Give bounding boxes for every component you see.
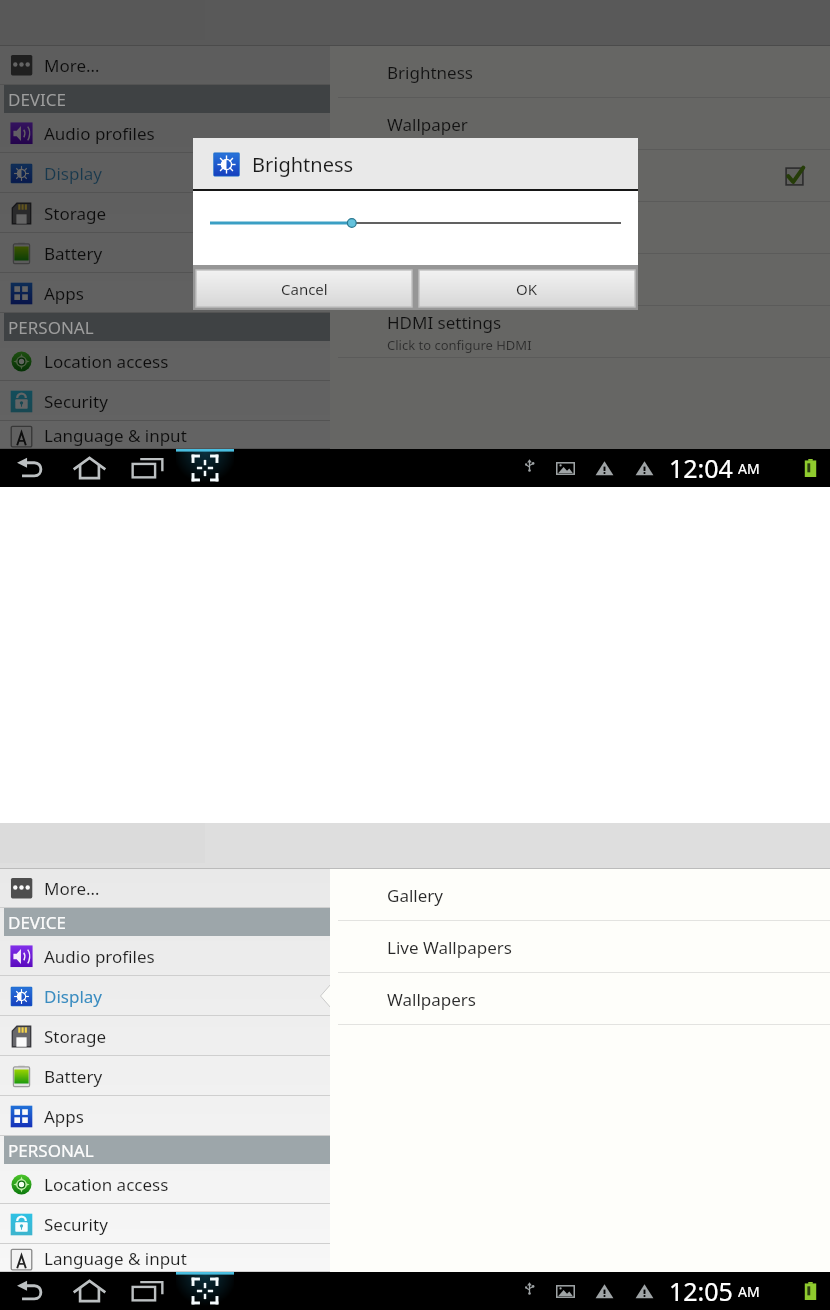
button[interactable]: Cancel bbox=[196, 270, 412, 307]
staticText: Language & input bbox=[44, 424, 187, 447]
staticText: Display bbox=[44, 985, 102, 1008]
staticText: AM bbox=[738, 1282, 760, 1301]
staticText: Gallery bbox=[387, 884, 443, 907]
button[interactable]: Back bbox=[2, 449, 60, 487]
staticText: Wallpaper bbox=[387, 113, 468, 136]
button[interactable]: Apps bbox=[0, 273, 330, 313]
button[interactable]: Language & input bbox=[0, 1244, 330, 1272]
staticText: PERSONAL bbox=[8, 1139, 94, 1162]
button[interactable]: Display bbox=[0, 976, 330, 1016]
staticText: AM bbox=[738, 459, 760, 478]
button[interactable]: Screenshot bbox=[176, 449, 234, 487]
button[interactable]: Storage bbox=[0, 193, 330, 233]
staticText: Audio profiles bbox=[44, 945, 155, 968]
staticText: 12:05 bbox=[669, 1274, 733, 1308]
button[interactable]: Language & input bbox=[0, 421, 330, 449]
staticText: OK bbox=[516, 279, 538, 299]
staticText: Storage bbox=[44, 202, 107, 225]
staticText: Storage bbox=[44, 1025, 107, 1048]
button[interactable]: More… bbox=[0, 46, 330, 85]
button[interactable]: Storage bbox=[0, 1016, 330, 1056]
staticText: 12:04 bbox=[669, 451, 733, 485]
staticText: Battery bbox=[44, 242, 103, 265]
button[interactable]: Recent apps bbox=[118, 449, 176, 487]
button[interactable]: HDMI settings bbox=[330, 306, 830, 358]
staticText: Security bbox=[44, 1213, 108, 1236]
button[interactable]: Sleep bbox=[330, 202, 830, 254]
staticText: Off bbox=[387, 284, 407, 302]
button[interactable]: Recent apps bbox=[118, 1272, 176, 1310]
staticText: Battery bbox=[44, 1065, 103, 1088]
staticText: More… bbox=[44, 877, 100, 900]
staticText: DEVICE bbox=[8, 88, 67, 111]
button[interactable]: OK bbox=[419, 270, 635, 307]
staticText: Security bbox=[44, 390, 108, 413]
staticText: Brightness bbox=[387, 61, 473, 84]
staticText: Location access bbox=[44, 1173, 169, 1196]
button[interactable]: Live Wallpapers bbox=[330, 921, 830, 973]
staticText: DEVICE bbox=[8, 911, 67, 934]
button[interactable]: Back bbox=[2, 1272, 60, 1310]
staticText: Daydream bbox=[387, 259, 470, 282]
button[interactable]: Gallery bbox=[330, 869, 830, 921]
button[interactable]: Auto-rotate screen bbox=[330, 150, 830, 202]
button[interactable]: Audio profiles bbox=[0, 936, 330, 976]
button[interactable]: Daydream bbox=[330, 254, 830, 306]
staticText: Live Wallpapers bbox=[387, 936, 512, 959]
button[interactable]: Apps bbox=[0, 1096, 330, 1136]
button[interactable]: Home bbox=[60, 449, 118, 487]
staticText: PERSONAL bbox=[8, 316, 94, 339]
button[interactable]: Battery bbox=[0, 233, 330, 273]
staticText: Display bbox=[44, 162, 102, 185]
staticText: Audio profiles bbox=[44, 122, 155, 145]
button[interactable]: Location access bbox=[0, 1164, 330, 1204]
button[interactable]: Wallpaper bbox=[330, 98, 830, 150]
button[interactable]: Display bbox=[0, 153, 330, 193]
staticText: Apps bbox=[44, 282, 84, 305]
button[interactable]: Security bbox=[0, 381, 330, 421]
staticText: Cancel bbox=[281, 279, 328, 299]
staticText: More… bbox=[44, 54, 100, 77]
button[interactable]: Battery bbox=[0, 1056, 330, 1096]
staticText: HDMI settings bbox=[387, 311, 502, 334]
staticText: Location access bbox=[44, 350, 169, 373]
button[interactable]: Location access bbox=[0, 341, 330, 381]
staticText: Click to configure HDMI bbox=[387, 336, 532, 354]
button[interactable]: Security bbox=[0, 1204, 330, 1244]
staticText: Language & input bbox=[44, 1247, 187, 1270]
button[interactable]: More… bbox=[0, 869, 330, 908]
button[interactable]: Home bbox=[60, 1272, 118, 1310]
staticText: Wallpapers bbox=[387, 988, 476, 1011]
staticText: Brightness bbox=[252, 151, 354, 178]
staticText: Sleep bbox=[387, 207, 431, 230]
button[interactable]: Screenshot bbox=[176, 1272, 234, 1310]
button[interactable]: Wallpapers bbox=[330, 973, 830, 1025]
staticText: Apps bbox=[44, 1105, 84, 1128]
button[interactable]: Brightness bbox=[330, 46, 830, 98]
button[interactable]: Audio profiles bbox=[0, 113, 330, 153]
